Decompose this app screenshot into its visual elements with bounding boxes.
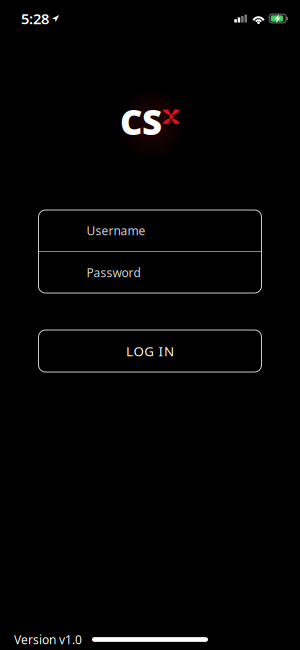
button[interactable]: Username xyxy=(38,210,261,251)
staticText: Password xyxy=(86,264,140,280)
staticText: Version v1.0 xyxy=(14,631,82,647)
staticText: 5:28 xyxy=(21,9,49,28)
staticText: LOG IN xyxy=(126,342,174,360)
button[interactable]: LOG IN xyxy=(38,330,261,372)
staticText: CS xyxy=(120,98,162,144)
button[interactable]: Password xyxy=(38,252,261,293)
staticText: Username xyxy=(86,222,145,238)
